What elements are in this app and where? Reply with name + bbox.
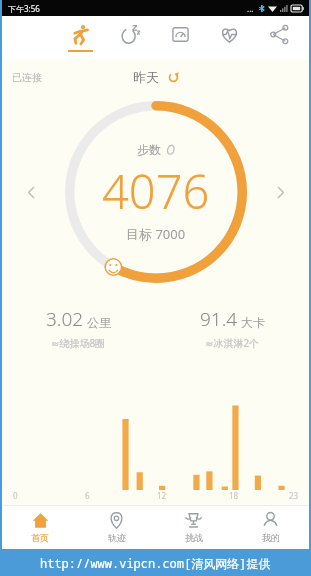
button[interactable]: 轨迹: [78, 506, 155, 549]
button[interactable]: 我的: [232, 506, 309, 549]
staticText: 0: [13, 490, 18, 501]
button[interactable]: Heart rate: [213, 16, 245, 60]
button[interactable]: 首页: [2, 506, 78, 549]
staticText: http://www.vipcn.com[清风网络]提供: [40, 555, 271, 571]
staticText: 18: [229, 490, 239, 501]
staticText: 目标 7000: [126, 225, 186, 243]
staticText: 6: [85, 490, 90, 501]
button[interactable]: Weight: [164, 16, 196, 60]
staticText: 91.4: [200, 306, 238, 332]
button[interactable]: 步数: [63, 99, 249, 285]
staticText: ≈冰淇淋2个: [205, 336, 260, 350]
staticText: 昨天: [133, 69, 159, 85]
staticText: 挑战: [185, 532, 203, 543]
staticText: 3.02: [46, 306, 84, 332]
staticText: 轨迹: [108, 532, 126, 543]
button[interactable]: Share: [263, 16, 295, 60]
staticText: ≈绕操场8圈: [51, 336, 106, 350]
staticText: 下午3:56: [8, 3, 40, 14]
button[interactable]: Previous day: [18, 179, 44, 205]
staticText: ...: [247, 3, 254, 14]
button[interactable]: 91.4: [155, 306, 309, 350]
staticText: 4076: [102, 159, 210, 223]
button[interactable]: Steps: [64, 16, 96, 60]
button[interactable]: Next day: [267, 179, 293, 205]
button[interactable]: Sleep: [114, 16, 146, 60]
staticText: 12: [157, 490, 167, 501]
staticText: 已连接: [12, 71, 42, 84]
staticText: 步数: [137, 142, 161, 157]
button[interactable]: 昨天: [133, 69, 179, 85]
staticText: 首页: [31, 532, 49, 543]
other: Refresh: [168, 72, 179, 83]
staticText: 我的: [262, 532, 280, 543]
staticText: 公里: [87, 315, 111, 330]
button[interactable]: 3.02: [2, 306, 155, 350]
staticText: 大卡: [241, 315, 265, 330]
button[interactable]: 挑战: [155, 506, 232, 549]
staticText: 23: [289, 490, 299, 501]
